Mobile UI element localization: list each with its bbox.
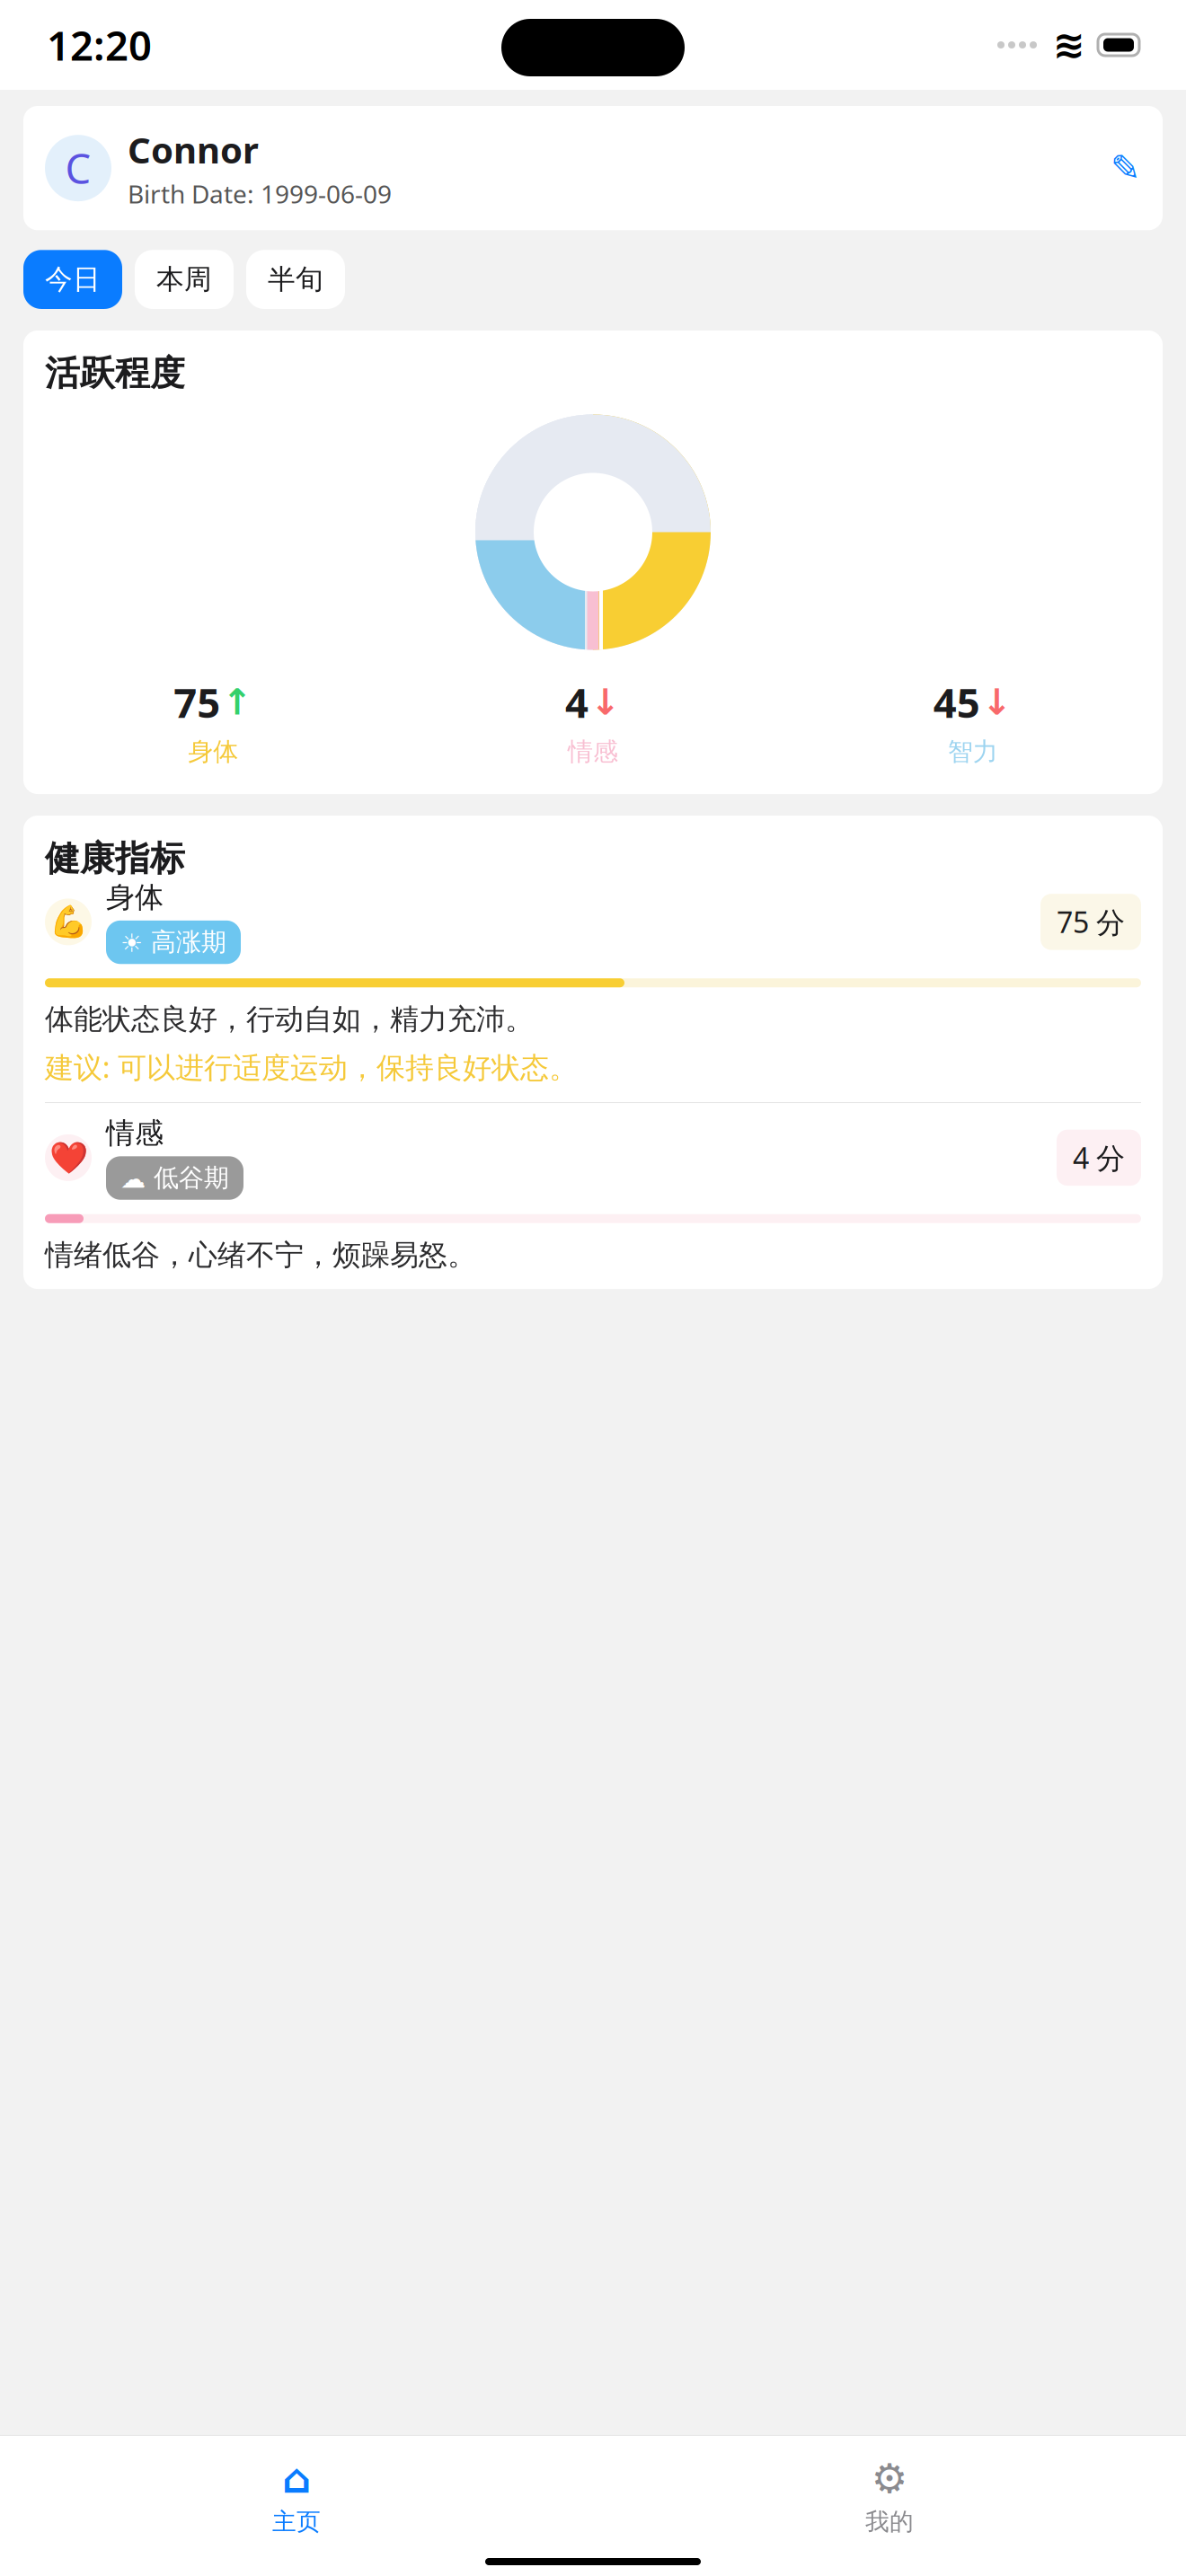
staticText: 4 分 (1073, 1139, 1125, 1177)
staticText: 我的 (865, 2507, 914, 2536)
staticText: 活跃程度 (45, 352, 185, 395)
button[interactable]: C (23, 106, 1163, 230)
button[interactable]: 今日 (23, 250, 122, 309)
staticText: 本周 (156, 263, 212, 296)
staticText: 情感 (568, 736, 618, 767)
staticText: ❤️ (49, 1140, 88, 1175)
staticText: 75 (174, 675, 220, 729)
staticText: Connor (128, 126, 259, 173)
staticText: ↑ (222, 682, 253, 722)
staticText: ✎ (1111, 148, 1141, 189)
staticText: ⌂ (282, 2455, 311, 2502)
staticText: 身体 (106, 880, 164, 915)
staticText: 建议: 可以进行适度运动，保持良好状态。 (45, 1048, 578, 1086)
staticText: Birth Date: 1999-06-09 (128, 177, 392, 210)
staticText: 今日 (45, 263, 101, 296)
button[interactable]: ⌂ (0, 2446, 593, 2545)
staticText: 情绪低谷，心绪不宁，烦躁易怒。 (45, 1237, 476, 1273)
staticText: 12:20 (47, 18, 152, 72)
staticText: ☁ 低谷期 (120, 1163, 229, 1193)
staticText: 智力 (948, 736, 998, 767)
staticText: 身体 (188, 736, 238, 767)
staticText: 体能状态良好，行动自如，精力充沛。 (45, 1002, 534, 1037)
staticText: 健康指标 (45, 837, 185, 880)
staticText: 情感 (106, 1116, 164, 1151)
staticText: ≋ (1053, 23, 1085, 67)
staticText: 45 (933, 675, 980, 729)
button[interactable]: 半旬 (246, 250, 345, 309)
staticText: 半旬 (268, 263, 323, 296)
staticText: 75 分 (1057, 903, 1125, 941)
staticText: ⚙ (871, 2455, 908, 2502)
staticText: 💪 (49, 904, 88, 940)
staticText: ↓ (590, 682, 621, 722)
staticText: ☀ 高涨期 (120, 927, 226, 958)
button[interactable]: 本周 (135, 250, 234, 309)
staticText: ↓ (982, 682, 1012, 722)
staticText: 4 (565, 675, 589, 729)
staticText: C (65, 141, 91, 195)
button[interactable]: ⚙ (593, 2446, 1186, 2545)
staticText: 主页 (272, 2507, 321, 2536)
